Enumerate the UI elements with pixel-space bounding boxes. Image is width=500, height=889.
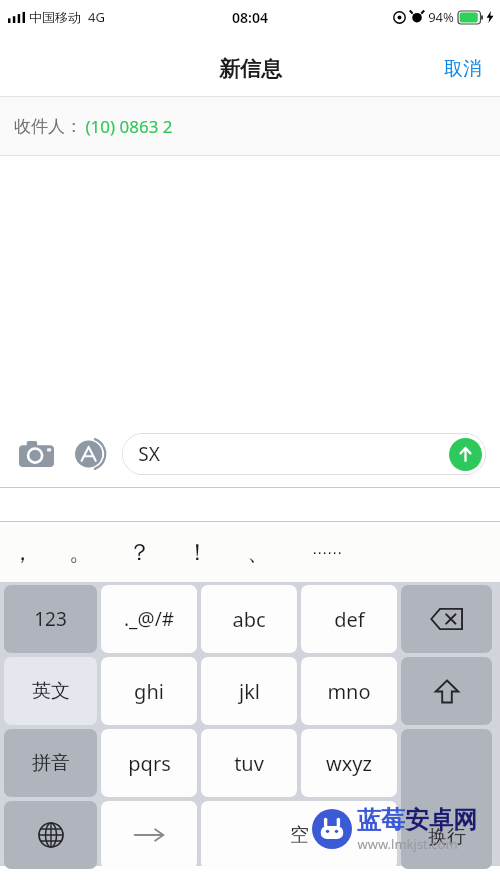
staticText: 。 xyxy=(69,538,92,567)
staticText: 英文 xyxy=(32,679,70,703)
button[interactable]: ， xyxy=(0,522,48,582)
staticText: (10) 0863 2 xyxy=(85,115,173,138)
staticText: 收件人： xyxy=(14,116,82,137)
button[interactable]: ？ xyxy=(113,522,165,582)
staticText: 取消 xyxy=(444,57,482,81)
button[interactable]: 收件人： xyxy=(0,97,500,155)
button[interactable]: tuv xyxy=(201,729,297,797)
staticText: 换行 xyxy=(428,825,466,849)
staticText: tuv xyxy=(234,750,264,777)
staticText: wxyz xyxy=(326,750,372,777)
button[interactable]: Next xyxy=(101,801,197,869)
button[interactable]: 换行 xyxy=(401,729,492,869)
button[interactable]: ！ xyxy=(171,522,223,582)
staticText: ghi xyxy=(134,678,164,705)
staticText: pqrs xyxy=(128,750,171,777)
staticText: def xyxy=(334,606,365,633)
staticText: 4G xyxy=(88,8,105,26)
staticText: ， xyxy=(11,538,34,567)
staticText: 123 xyxy=(34,606,67,632)
staticText: ？ xyxy=(128,538,151,567)
button[interactable]: 英文 xyxy=(4,657,97,725)
staticText: 中国移动 xyxy=(29,9,81,25)
button[interactable]: SX xyxy=(122,433,486,475)
staticText: 蓝莓 xyxy=(357,805,405,835)
button[interactable]: 拼音 xyxy=(4,729,97,797)
staticText: ._@/# xyxy=(124,606,174,632)
button[interactable]: ._@/# xyxy=(101,585,197,653)
staticText: 新信息 xyxy=(219,56,282,82)
button[interactable]: Change keyboard xyxy=(4,801,97,869)
staticText: jkl xyxy=(239,678,260,705)
staticText: www.lmkjst.com xyxy=(357,835,458,853)
staticText: 拼音 xyxy=(32,751,70,775)
button[interactable]: Shift xyxy=(401,657,492,725)
staticText: 08:04 xyxy=(232,8,268,27)
button[interactable]: Delete xyxy=(401,585,492,653)
staticText: mno xyxy=(327,678,371,705)
staticText: 94% xyxy=(428,8,454,26)
staticText: SX xyxy=(138,441,160,467)
button[interactable]: def xyxy=(301,585,397,653)
button[interactable]: 取消 xyxy=(426,49,500,89)
button[interactable]: App Store xyxy=(68,432,112,476)
staticText: ！ xyxy=(186,538,209,567)
button[interactable]: 。 xyxy=(54,522,106,582)
button[interactable]: jkl xyxy=(201,657,297,725)
button[interactable]: Send xyxy=(449,438,482,471)
staticText: ⋯⋯ xyxy=(312,544,342,561)
button[interactable]: pqrs xyxy=(101,729,197,797)
staticText: 空 xyxy=(290,823,309,847)
button[interactable]: 、 xyxy=(232,522,284,582)
staticText: abc xyxy=(232,606,266,633)
button[interactable]: ⋯⋯ xyxy=(301,522,353,582)
button[interactable]: ghi xyxy=(101,657,197,725)
staticText: 安卓网 xyxy=(405,805,477,835)
staticText: 、 xyxy=(247,538,270,567)
button[interactable]: Camera xyxy=(14,432,58,476)
button[interactable]: 空 xyxy=(201,801,397,869)
button[interactable]: mno xyxy=(301,657,397,725)
button[interactable]: wxyz xyxy=(301,729,397,797)
button[interactable]: abc xyxy=(201,585,297,653)
button[interactable]: 123 xyxy=(4,585,97,653)
